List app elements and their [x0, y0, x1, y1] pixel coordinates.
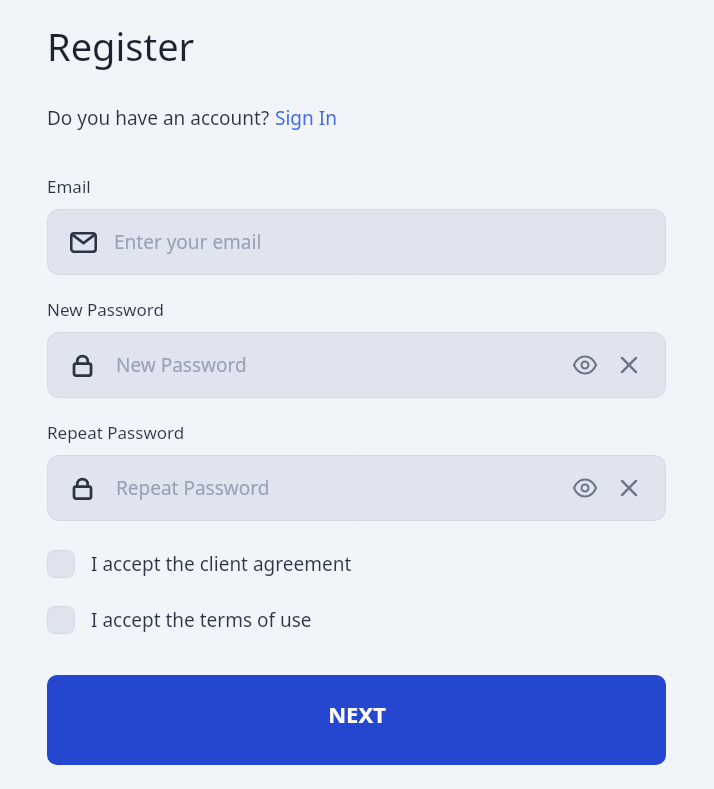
staticText: New Password — [47, 298, 164, 321]
staticText: Do you have an account? — [47, 105, 275, 131]
staticText: I accept the client agreement — [91, 551, 352, 577]
button[interactable]: I accept the client agreement — [47, 541, 666, 587]
staticText: Register — [47, 20, 195, 72]
button[interactable]: Enter your email — [47, 209, 666, 275]
staticText: NEXT — [328, 699, 386, 729]
staticText: New Password — [116, 352, 247, 378]
staticText: Repeat Password — [47, 421, 185, 444]
staticText: Enter your email — [114, 229, 262, 255]
staticText: Email — [47, 175, 91, 198]
staticText: Sign In — [275, 105, 337, 131]
button[interactable]: Show password — [570, 473, 600, 503]
button[interactable]: I accept the terms of use — [47, 597, 666, 643]
button[interactable]: New Password — [47, 332, 666, 398]
button[interactable]: NEXT — [47, 675, 666, 765]
button[interactable]: Clear — [614, 350, 644, 380]
staticText: I accept the terms of use — [91, 607, 312, 633]
button[interactable]: Repeat Password — [47, 455, 666, 521]
button[interactable]: Sign In — [275, 105, 337, 131]
button[interactable]: Clear — [614, 473, 644, 503]
staticText: Repeat Password — [116, 475, 270, 501]
button[interactable]: Show password — [570, 350, 600, 380]
